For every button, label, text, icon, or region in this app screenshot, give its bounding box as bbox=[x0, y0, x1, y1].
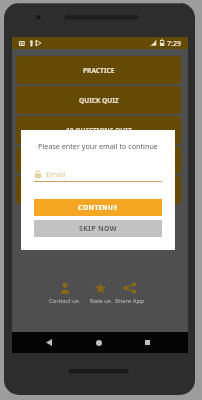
button[interactable]: Home bbox=[90, 332, 108, 353]
button[interactable]: MOCK TEST bbox=[16, 146, 181, 174]
staticText: SKIP NOW bbox=[79, 224, 117, 234]
staticText: 10 QUESTIONS QUIZ bbox=[66, 126, 132, 135]
button[interactable]: Recent apps bbox=[138, 332, 156, 353]
staticText: PRACTICE bbox=[83, 66, 115, 75]
button[interactable]: RESULTS bbox=[16, 176, 181, 204]
button[interactable]: Share App bbox=[111, 281, 147, 305]
staticText: QUICK QUIZ bbox=[79, 96, 119, 105]
staticText: Email bbox=[46, 169, 66, 179]
button[interactable]: PRACTICE bbox=[16, 56, 181, 84]
button[interactable]: Back bbox=[40, 332, 58, 353]
button[interactable]: 10 QUESTIONS QUIZ bbox=[16, 116, 181, 144]
staticText: Please enter your email to continue bbox=[21, 141, 175, 151]
staticText: Rate us bbox=[90, 297, 111, 305]
button[interactable]: CONTINUE bbox=[34, 199, 162, 216]
staticText: Contact us bbox=[49, 297, 79, 305]
button[interactable]: Rate us bbox=[82, 281, 118, 305]
staticText: CONTINUE bbox=[78, 203, 118, 213]
staticText: 7:29 bbox=[167, 39, 181, 49]
button[interactable]: Contact us bbox=[46, 281, 82, 305]
button[interactable]: QUICK QUIZ bbox=[16, 86, 181, 114]
staticText: Share App bbox=[115, 297, 144, 305]
button[interactable]: SKIP NOW bbox=[34, 220, 162, 237]
